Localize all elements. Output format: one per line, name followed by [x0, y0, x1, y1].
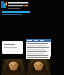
button[interactable]: Portrait photo one [1, 59, 26, 75]
button[interactable]: Caption [26, 56, 50, 62]
button[interactable]: Portrait photo two [26, 59, 51, 75]
button[interactable]: Data table [26, 39, 51, 57]
button[interactable]: Presentation title [1, 1, 30, 9]
button[interactable]: Summary card [2, 41, 23, 54]
button[interactable]: Section heading [2, 11, 30, 15]
